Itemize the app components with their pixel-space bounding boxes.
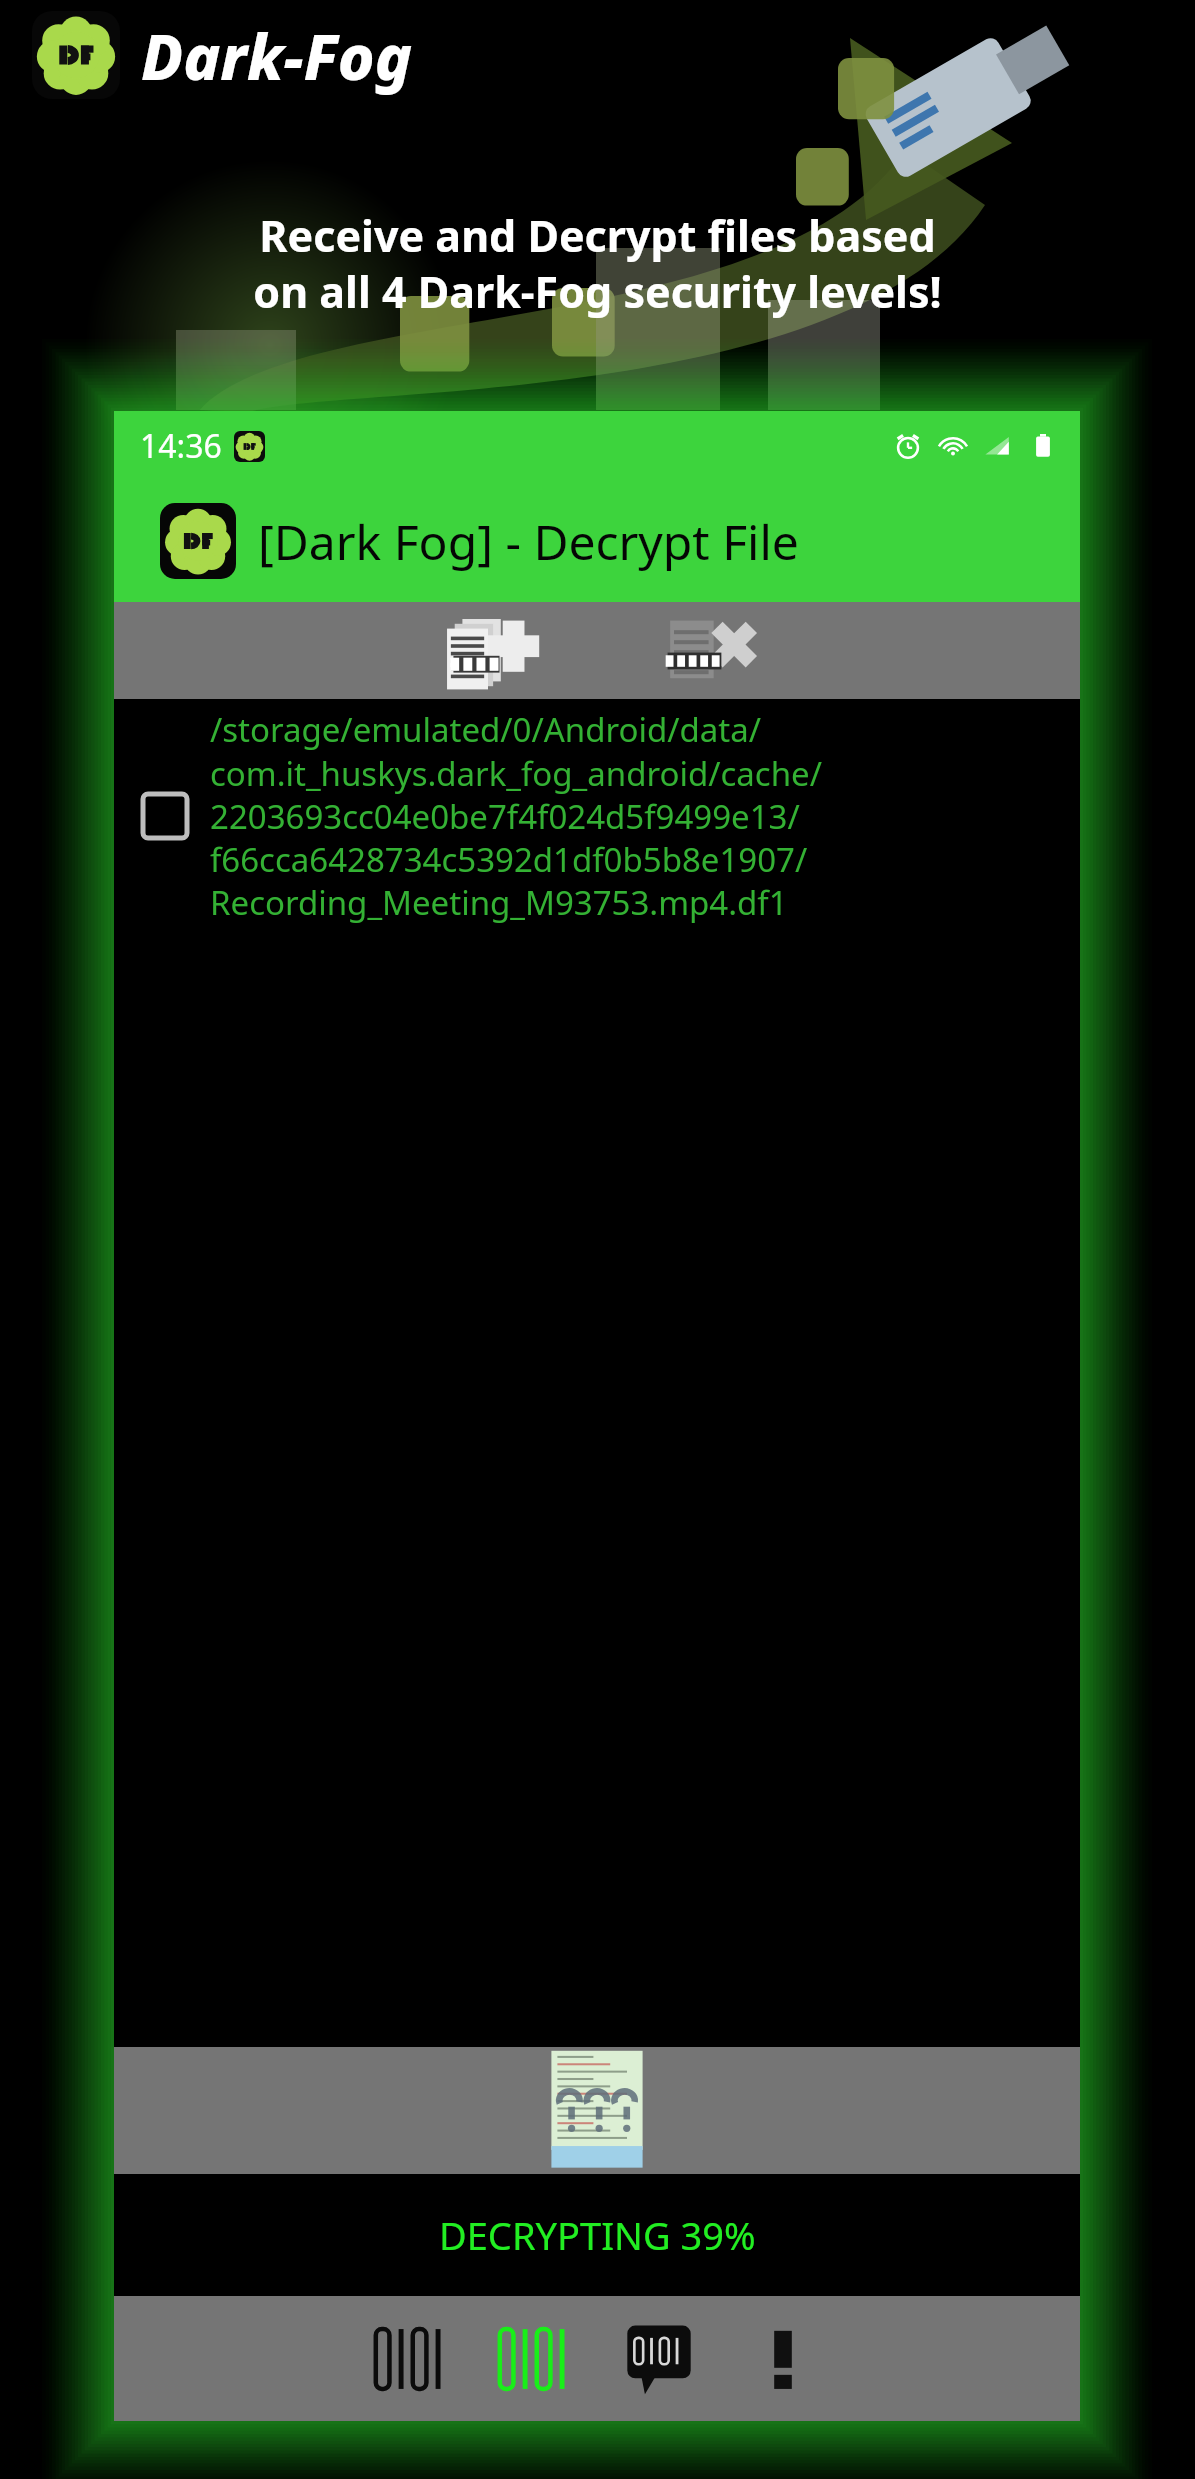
button[interactable]: Info	[735, 2311, 831, 2407]
staticText: DECRYPTING 39%	[439, 2209, 756, 2261]
button[interactable]: Add file	[424, 611, 552, 691]
button[interactable]: Encrypt text	[363, 2311, 459, 2407]
button[interactable]: Dark-Fog app icon	[32, 11, 120, 99]
staticText: /storage/emulated/0/Android/data/ com.it…	[210, 707, 822, 924]
staticText: [Dark Fog] - Decrypt File	[258, 509, 799, 574]
button[interactable]: Reset	[642, 611, 770, 691]
staticText: Receive and Decrypt files based on all 4…	[50, 206, 1145, 321]
staticText: 14:36	[140, 424, 222, 468]
staticText: Dark-Fog	[141, 14, 413, 98]
button[interactable]: [Dark Fog] - Decrypt File	[114, 480, 1080, 602]
button[interactable]: Messages	[611, 2311, 707, 2407]
button[interactable]: Decrypt file	[487, 2311, 583, 2407]
button[interactable]: /storage/emulated/0/Android/data/ com.it…	[132, 707, 1080, 924]
